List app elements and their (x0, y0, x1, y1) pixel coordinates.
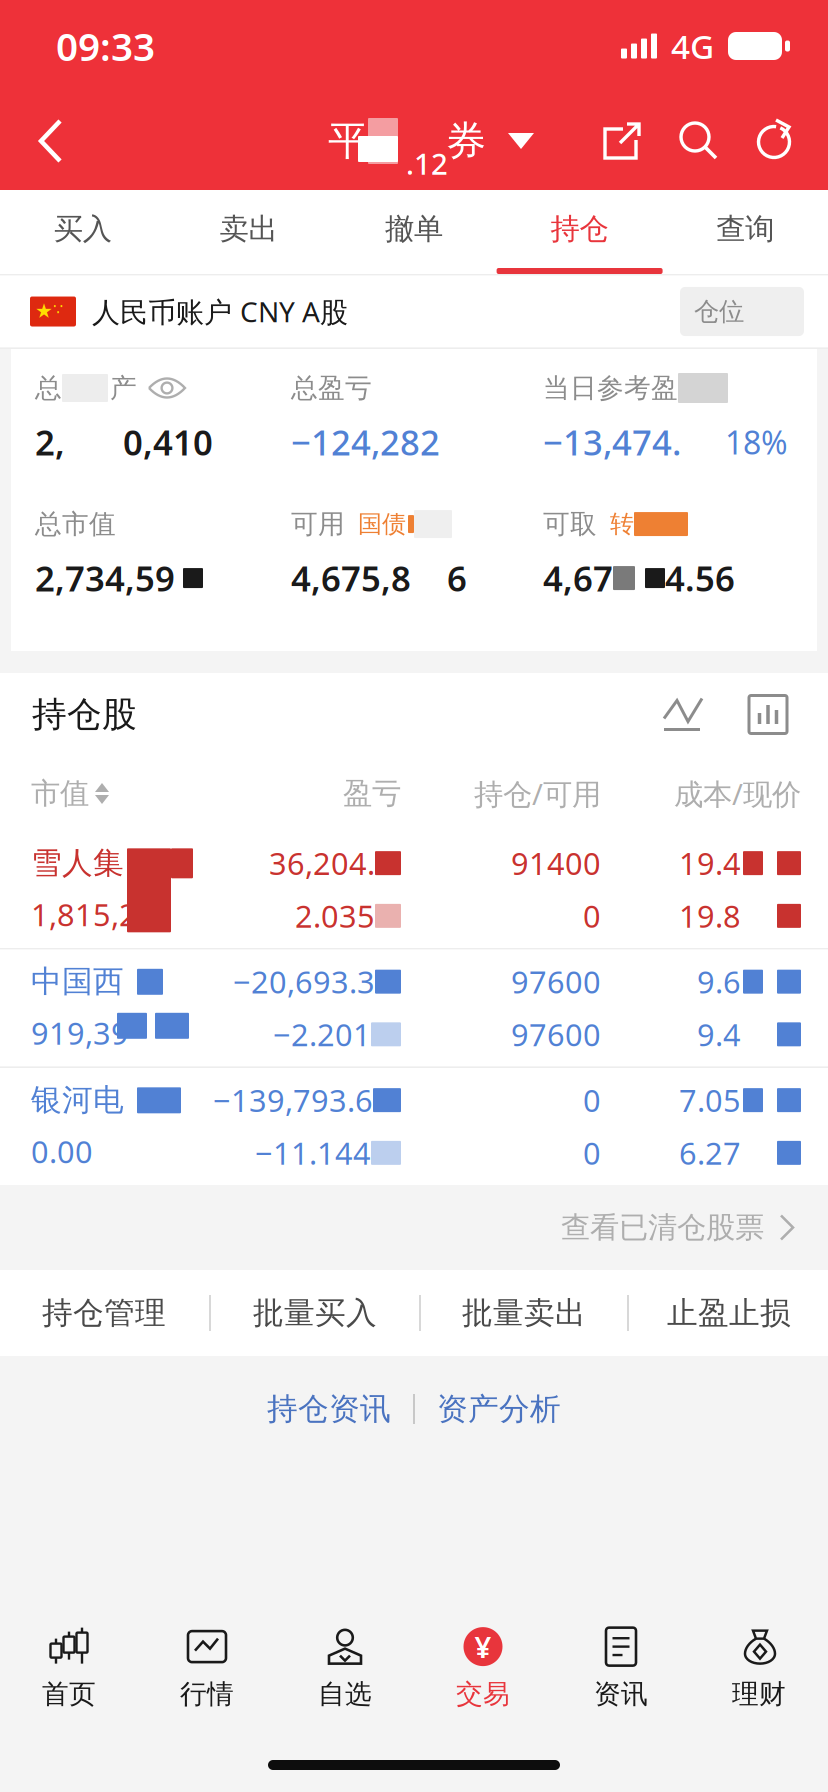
staticText: 止盈止损 (667, 1294, 791, 1332)
button[interactable]: 首页 (0, 1616, 138, 1722)
staticText: 91400 (511, 843, 601, 883)
button[interactable]: 分享 (584, 92, 660, 190)
staticText: −13,474. (543, 419, 681, 465)
staticText: 2.035 (295, 895, 375, 936)
staticText: 查看已清仓股票 (561, 1209, 764, 1245)
button[interactable]: 行情 (138, 1616, 276, 1722)
button[interactable]: 走势图 (656, 686, 712, 742)
staticText: ∵ (53, 300, 63, 319)
button[interactable]: 持仓管理 (0, 1270, 209, 1356)
staticText: 转 (610, 509, 634, 539)
button[interactable]: 批量卖出 (421, 1270, 627, 1356)
staticText: ★ (35, 299, 53, 322)
staticText: 总 (35, 372, 62, 404)
staticText: 理财 (732, 1678, 786, 1710)
staticText: 36,204. (269, 843, 375, 883)
staticText: 0 (583, 895, 601, 936)
button[interactable]: 批量买入 (211, 1270, 419, 1356)
staticText: 18% (725, 421, 788, 463)
staticText: 总市值 (35, 508, 116, 540)
button[interactable]: 撤单 (331, 190, 497, 274)
staticText: 资讯 (594, 1678, 648, 1710)
button[interactable]: 平 (136, 92, 534, 190)
button[interactable]: 止盈止损 (629, 1270, 828, 1356)
staticText: 0 (583, 1080, 601, 1120)
button[interactable]: 仓位 (680, 287, 804, 336)
staticText: 成本/现价 (674, 774, 801, 813)
staticText: 批量买入 (253, 1294, 377, 1332)
staticText: .12 (406, 144, 448, 183)
staticText: 97600 (511, 1014, 601, 1055)
button[interactable]: 银河电 (0, 1068, 828, 1185)
staticText: 可用 (291, 508, 345, 540)
staticText: 可取 (543, 508, 597, 540)
staticText: 人民币账户 CNY A股 (92, 293, 348, 330)
staticText: 持仓股 (32, 693, 137, 736)
staticText: 产 (110, 372, 137, 404)
staticText: 4,67 (543, 555, 613, 601)
staticText: 自选 (318, 1678, 372, 1710)
staticText: 买入 (54, 211, 112, 247)
staticText: 6 (447, 555, 467, 601)
staticText: 首页 (42, 1678, 96, 1710)
staticText: 市值 (31, 775, 89, 811)
staticText: 雪人集 (31, 844, 124, 882)
staticText: 09:33 (56, 20, 155, 72)
staticText: 9.6 (697, 961, 741, 1002)
staticText: 4G (671, 24, 714, 68)
staticText: 仓位 (694, 296, 744, 327)
staticText: 查询 (716, 211, 774, 247)
staticText: 国债 (358, 509, 406, 539)
button[interactable]: 持仓资讯 (245, 1370, 413, 1448)
staticText: 19.4 (679, 843, 741, 883)
button[interactable]: 资产分析 (415, 1370, 583, 1448)
staticText: ¥ (474, 1627, 491, 1666)
staticText: −11.144 (255, 1132, 371, 1173)
staticText: 7.05 (679, 1080, 741, 1120)
staticText: 持仓/可用 (474, 774, 601, 813)
staticText: 6.27 (679, 1132, 741, 1173)
button[interactable]: 搜索 (660, 92, 736, 190)
staticText: −2.201 (273, 1014, 371, 1055)
staticText: 19.8 (679, 895, 741, 936)
staticText: 批量卖出 (462, 1294, 586, 1332)
staticText: 卖出 (219, 211, 277, 247)
staticText: −139,793.6 (213, 1080, 373, 1120)
staticText: 银河电 (31, 1081, 124, 1119)
button[interactable]: 理财 (690, 1616, 828, 1722)
button[interactable]: 中国西 (0, 949, 828, 1066)
staticText: 券 (446, 116, 486, 165)
staticText: 当日参考盈 (543, 372, 678, 404)
staticText: 平 (328, 116, 368, 165)
staticText: −124,282 (291, 419, 440, 465)
staticText: 撤单 (385, 211, 443, 247)
button[interactable]: 自选 (276, 1616, 414, 1722)
button[interactable]: 持仓 (497, 190, 662, 274)
staticText: 2,734,59 (35, 555, 175, 601)
staticText: 总盈亏 (291, 372, 372, 404)
staticText: 4,675,8 (291, 555, 411, 601)
staticText: 0.00 (31, 1131, 93, 1172)
staticText: 9.4 (697, 1014, 741, 1055)
staticText: −20,693.3 (233, 961, 375, 1002)
staticText: 0 (583, 1132, 601, 1173)
staticText: 4.56 (665, 555, 735, 601)
staticText: 1,815,2 (31, 894, 137, 935)
staticText: 盈亏 (343, 775, 401, 811)
staticText: 交易 (456, 1678, 510, 1710)
button[interactable]: 柱状图 (740, 686, 796, 742)
staticText: 0,410 (123, 419, 213, 465)
button[interactable]: 雪人集 (0, 831, 828, 948)
button[interactable]: 返回 (0, 92, 86, 190)
button[interactable]: 刷新 (736, 92, 812, 190)
staticText: 919,39 (31, 1012, 129, 1053)
button[interactable]: ¥ (414, 1616, 552, 1722)
button[interactable]: 卖出 (166, 190, 331, 274)
button[interactable]: 资讯 (552, 1616, 690, 1722)
button[interactable]: 查询 (662, 190, 828, 274)
button[interactable]: 查看已清仓股票 (0, 1185, 828, 1270)
staticText: 资产分析 (437, 1390, 561, 1428)
staticText: 2, (35, 419, 65, 465)
staticText: 行情 (180, 1678, 234, 1710)
button[interactable]: 买入 (0, 190, 166, 274)
